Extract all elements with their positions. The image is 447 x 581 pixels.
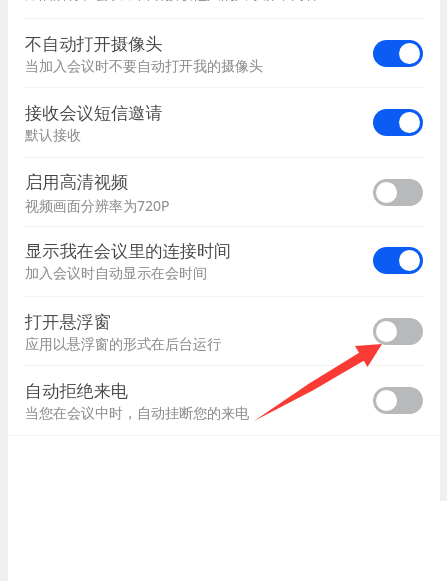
button[interactable]: 不自动打开摄像头 (8, 18, 440, 88)
button[interactable]: Toggle off (373, 179, 423, 206)
staticText: 加入会议时自动显示在会时间 (25, 265, 207, 283)
button[interactable]: 自动拒绝来电 (8, 365, 440, 435)
staticText: 应用以悬浮窗的形式在后台运行 (25, 336, 221, 354)
staticText: 开启后将在会议中自动接收他人的共享屏幕内容 (25, 0, 319, 4)
button[interactable]: Toggle on (373, 40, 423, 67)
button[interactable]: 打开悬浮窗 (8, 296, 440, 366)
staticText: 打开悬浮窗 (25, 311, 111, 333)
button[interactable]: Toggle off (373, 318, 423, 345)
staticText: 当您在会议中时，自动挂断您的来电 (25, 405, 249, 423)
staticText: 显示我在会议里的连接时间 (25, 240, 232, 262)
button[interactable]: Toggle on (373, 109, 423, 136)
button[interactable]: 显示我在会议里的连接时间 (8, 226, 440, 295)
staticText: 当加入会议时不要自动打开我的摄像头 (25, 58, 263, 76)
button[interactable]: 接收会议短信邀请 (8, 87, 440, 157)
staticText: 视频画面分辨率为720P (25, 196, 170, 215)
staticText: 接收会议短信邀请 (25, 102, 163, 124)
button[interactable]: Toggle on (373, 247, 423, 274)
staticText: 默认接收 (25, 127, 81, 145)
staticText: 启用高清视频 (25, 171, 129, 193)
button[interactable]: Toggle off (373, 387, 423, 414)
staticText: 自动拒绝来电 (25, 380, 129, 402)
button[interactable]: 启用高清视频 (8, 157, 440, 227)
staticText: 不自动打开摄像头 (25, 33, 163, 55)
